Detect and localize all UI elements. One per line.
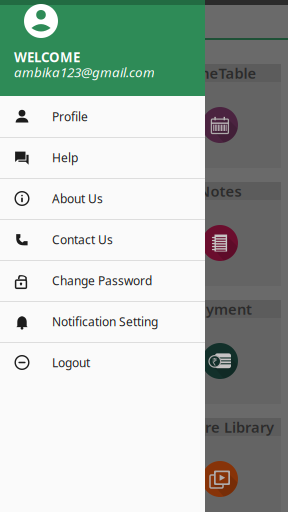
button[interactable]: Profile [0, 96, 205, 137]
staticText: Change Password [52, 272, 152, 288]
staticText: Results [42, 181, 93, 201]
staticText: ₹ [60, 354, 66, 368]
staticText: TimeTable [183, 63, 256, 83]
staticText: About Us [52, 190, 103, 206]
button[interactable]: Change Password [0, 260, 205, 301]
staticText: Contact Us [52, 231, 113, 247]
staticText: Attendance [26, 63, 109, 83]
button[interactable]: Help [0, 137, 205, 178]
staticText: WELCOME [14, 48, 80, 66]
staticText: Lecture Library [166, 417, 274, 437]
staticText: Payment [188, 299, 252, 319]
staticText: Logout [52, 354, 90, 370]
staticText: Notification Setting [52, 313, 158, 329]
staticText: Profile [52, 108, 88, 124]
button[interactable]: About Us [0, 178, 205, 219]
staticText: ambika123@gmail.com [14, 63, 155, 81]
button[interactable]: Contact Us [0, 219, 205, 260]
staticText: ₹ [212, 354, 218, 368]
staticText: Fees [51, 299, 84, 319]
staticText: Help [52, 149, 78, 165]
button[interactable]: Notification Setting [0, 301, 205, 342]
staticText: Notes [198, 181, 241, 201]
button[interactable]: Logout [0, 342, 205, 383]
